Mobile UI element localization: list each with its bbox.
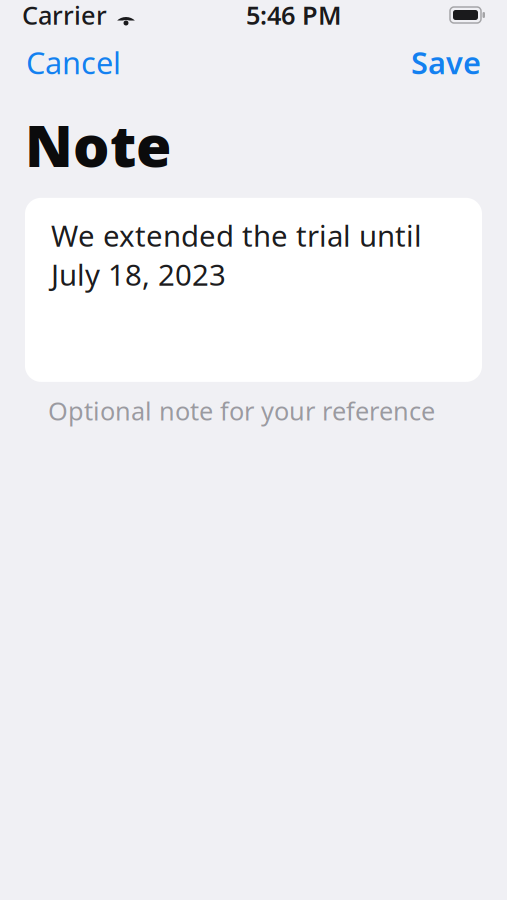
staticText: Optional note for your reference [48,394,435,427]
staticText: Save [411,42,481,83]
staticText: 5:46 PM [246,0,342,32]
button[interactable]: We extended the trial until July 18, 202… [25,198,482,382]
staticText: Cancel [26,42,121,83]
staticText: Carrier [22,0,107,32]
button[interactable]: Save [407,36,485,89]
staticText: We extended the trial until July 18, 202… [51,216,422,294]
staticText: Note [25,107,171,183]
button[interactable]: Cancel [22,36,125,89]
